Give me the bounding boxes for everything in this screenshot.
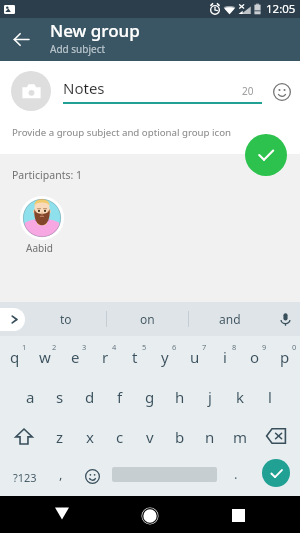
staticText: x [86, 427, 94, 447]
staticText: ?123 [13, 470, 37, 485]
staticText: 0 [292, 342, 297, 352]
staticText: 6 [172, 342, 177, 352]
staticText: 9 [262, 342, 267, 352]
button[interactable]: f [105, 376, 135, 416]
staticText: Provide a group subject and optional gro… [12, 126, 232, 139]
staticText: 5 [142, 342, 147, 352]
staticText: . [234, 465, 238, 483]
button[interactable]: m [225, 416, 255, 456]
staticText: v [146, 427, 154, 447]
button[interactable]: s [45, 376, 75, 416]
button[interactable]: c [105, 416, 135, 456]
staticText: z [56, 427, 64, 447]
staticText: f [117, 387, 123, 407]
button[interactable]: Emoji [271, 81, 292, 102]
staticText: y [161, 347, 169, 367]
button[interactable]: Emoji [72, 456, 112, 496]
staticText: Participants: 1 [12, 168, 83, 182]
staticText: 1 [22, 342, 27, 352]
staticText: 3 [82, 342, 87, 352]
button[interactable]: Back [42, 496, 82, 533]
button[interactable]: e [60, 336, 90, 376]
staticText: Aabid [26, 241, 53, 255]
button[interactable]: Backspace [255, 416, 300, 456]
staticText: 2 [52, 342, 57, 352]
button[interactable]: h [165, 376, 195, 416]
button[interactable]: t [120, 336, 150, 376]
staticText: Notes [63, 78, 242, 98]
staticText: New group [50, 19, 140, 42]
staticText: to [60, 311, 72, 327]
staticText: d [85, 387, 95, 407]
button[interactable]: Aabid [20, 196, 64, 255]
staticText: 4 [112, 342, 117, 352]
staticText: q [10, 347, 20, 367]
button[interactable]: Back [0, 18, 43, 61]
staticText: p [280, 347, 290, 367]
button[interactable]: u [180, 336, 210, 376]
button[interactable]: on [107, 302, 188, 336]
button[interactable]: Create group [245, 134, 287, 176]
staticText: and [219, 311, 241, 327]
button[interactable]: j [195, 376, 225, 416]
button[interactable]: Space [112, 456, 217, 496]
button[interactable]: to [25, 302, 106, 336]
button[interactable]: o [240, 336, 270, 376]
button[interactable]: . [217, 456, 255, 496]
button[interactable]: r [90, 336, 120, 376]
button[interactable]: q [0, 336, 30, 376]
staticText: e [71, 347, 80, 367]
button[interactable]: , [50, 456, 72, 496]
button[interactable]: Home [130, 496, 170, 533]
staticText: r [102, 347, 109, 367]
staticText: l [268, 387, 272, 407]
staticText: Add subject [50, 42, 106, 56]
button[interactable]: Recents [218, 496, 258, 533]
staticText: k [236, 387, 245, 407]
button[interactable]: k [225, 376, 255, 416]
staticText: h [175, 387, 185, 407]
staticText: a [26, 387, 35, 407]
staticText: 12:05 [266, 1, 296, 17]
button[interactable]: Enter [255, 456, 300, 496]
button[interactable]: n [195, 416, 225, 456]
button[interactable]: ?123 [0, 456, 50, 496]
staticText: j [208, 387, 212, 407]
button[interactable]: w [30, 336, 60, 376]
button[interactable]: More suggestions [0, 308, 25, 331]
staticText: m [233, 427, 248, 447]
button[interactable]: l [255, 376, 285, 416]
button[interactable]: g [135, 376, 165, 416]
staticText: u [190, 347, 200, 367]
staticText: , [59, 465, 63, 483]
staticText: 20 [242, 84, 254, 98]
button[interactable]: z [45, 416, 75, 456]
button[interactable]: x [75, 416, 105, 456]
button[interactable]: b [165, 416, 195, 456]
staticText: w [39, 347, 51, 367]
button[interactable]: i [210, 336, 240, 376]
staticText: g [145, 387, 155, 407]
staticText: s [56, 387, 64, 407]
staticText: on [140, 311, 155, 327]
button[interactable]: d [75, 376, 105, 416]
staticText: 8 [232, 342, 237, 352]
button[interactable]: Voice input [270, 304, 300, 334]
staticText: i [223, 347, 227, 367]
button[interactable]: y [150, 336, 180, 376]
staticText: t [132, 347, 138, 367]
button[interactable]: and [189, 302, 270, 336]
staticText: c [116, 427, 124, 447]
button[interactable]: a [15, 376, 45, 416]
button[interactable]: v [135, 416, 165, 456]
button[interactable]: Shift [0, 416, 45, 456]
staticText: n [205, 427, 215, 447]
button[interactable]: p [270, 336, 300, 376]
staticText: o [250, 347, 260, 367]
staticText: b [175, 427, 185, 447]
button[interactable]: Group icon [11, 71, 51, 111]
staticText: 7 [202, 342, 207, 352]
